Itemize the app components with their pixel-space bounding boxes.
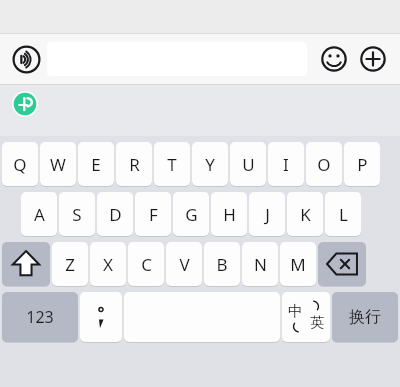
button[interactable]: T bbox=[154, 142, 190, 186]
button[interactable]: V bbox=[166, 242, 202, 286]
staticText: F bbox=[149, 203, 158, 226]
staticText: D bbox=[109, 203, 122, 226]
button[interactable]: B bbox=[204, 242, 240, 286]
button[interactable]: F bbox=[135, 192, 171, 236]
button[interactable]: U bbox=[230, 142, 266, 186]
staticText: O bbox=[317, 153, 331, 176]
staticText: Y bbox=[205, 153, 215, 176]
staticText: Z bbox=[65, 253, 75, 276]
staticText: 英 bbox=[310, 314, 324, 332]
button[interactable]: 123 bbox=[2, 292, 78, 342]
button[interactable]: Voice input bbox=[9, 42, 43, 76]
staticText: V bbox=[179, 253, 190, 276]
staticText: Q bbox=[13, 153, 27, 176]
staticText: J bbox=[265, 203, 270, 226]
button[interactable]: C bbox=[128, 242, 164, 286]
button[interactable]: Backspace bbox=[318, 242, 366, 286]
staticText: A bbox=[34, 203, 45, 226]
staticText: G bbox=[185, 203, 198, 226]
staticText: B bbox=[216, 253, 228, 276]
staticText: U bbox=[242, 153, 255, 176]
staticText: X bbox=[103, 253, 113, 276]
staticText: S bbox=[72, 203, 82, 226]
button[interactable]: Q bbox=[2, 142, 38, 186]
button[interactable]: Punctuation bbox=[80, 292, 122, 342]
button[interactable]: Y bbox=[192, 142, 228, 186]
button[interactable]: Switch Chinese English bbox=[282, 292, 330, 342]
button[interactable]: J bbox=[249, 192, 285, 236]
staticText: K bbox=[300, 203, 311, 226]
staticText: I bbox=[283, 153, 289, 176]
button[interactable]: I bbox=[268, 142, 304, 186]
button[interactable]: More options bbox=[357, 43, 389, 75]
button[interactable]: A bbox=[21, 192, 57, 236]
button[interactable]: Emoji bbox=[318, 43, 350, 75]
button[interactable]: 换行 bbox=[332, 292, 398, 342]
button[interactable]: Shift bbox=[2, 242, 50, 286]
staticText: M bbox=[290, 253, 306, 276]
staticText: L bbox=[339, 203, 348, 226]
button[interactable]: D bbox=[97, 192, 133, 236]
button[interactable]: W bbox=[40, 142, 76, 186]
button[interactable]: R bbox=[116, 142, 152, 186]
button[interactable]: X bbox=[90, 242, 126, 286]
button[interactable]: G bbox=[173, 192, 209, 236]
button[interactable]: M bbox=[280, 242, 316, 286]
button[interactable]: S bbox=[59, 192, 95, 236]
staticText: 123 bbox=[26, 306, 54, 328]
staticText: T bbox=[167, 153, 177, 176]
staticText: R bbox=[129, 153, 140, 176]
button[interactable]: Input method bbox=[12, 91, 38, 117]
button[interactable]: H bbox=[211, 192, 247, 236]
staticText: H bbox=[223, 203, 236, 226]
button[interactable]: E bbox=[78, 142, 114, 186]
staticText: 中 bbox=[288, 302, 303, 321]
staticText: W bbox=[50, 153, 66, 176]
staticText: C bbox=[141, 253, 152, 276]
staticText: 换行 bbox=[349, 307, 381, 327]
button[interactable]: O bbox=[306, 142, 342, 186]
staticText: P bbox=[357, 153, 368, 176]
button[interactable]: Z bbox=[52, 242, 88, 286]
staticText: N bbox=[254, 253, 267, 276]
button[interactable]: N bbox=[242, 242, 278, 286]
button[interactable]: K bbox=[287, 192, 323, 236]
button[interactable]: P bbox=[344, 142, 380, 186]
button[interactable]: L bbox=[325, 192, 361, 236]
staticText: E bbox=[91, 153, 101, 176]
